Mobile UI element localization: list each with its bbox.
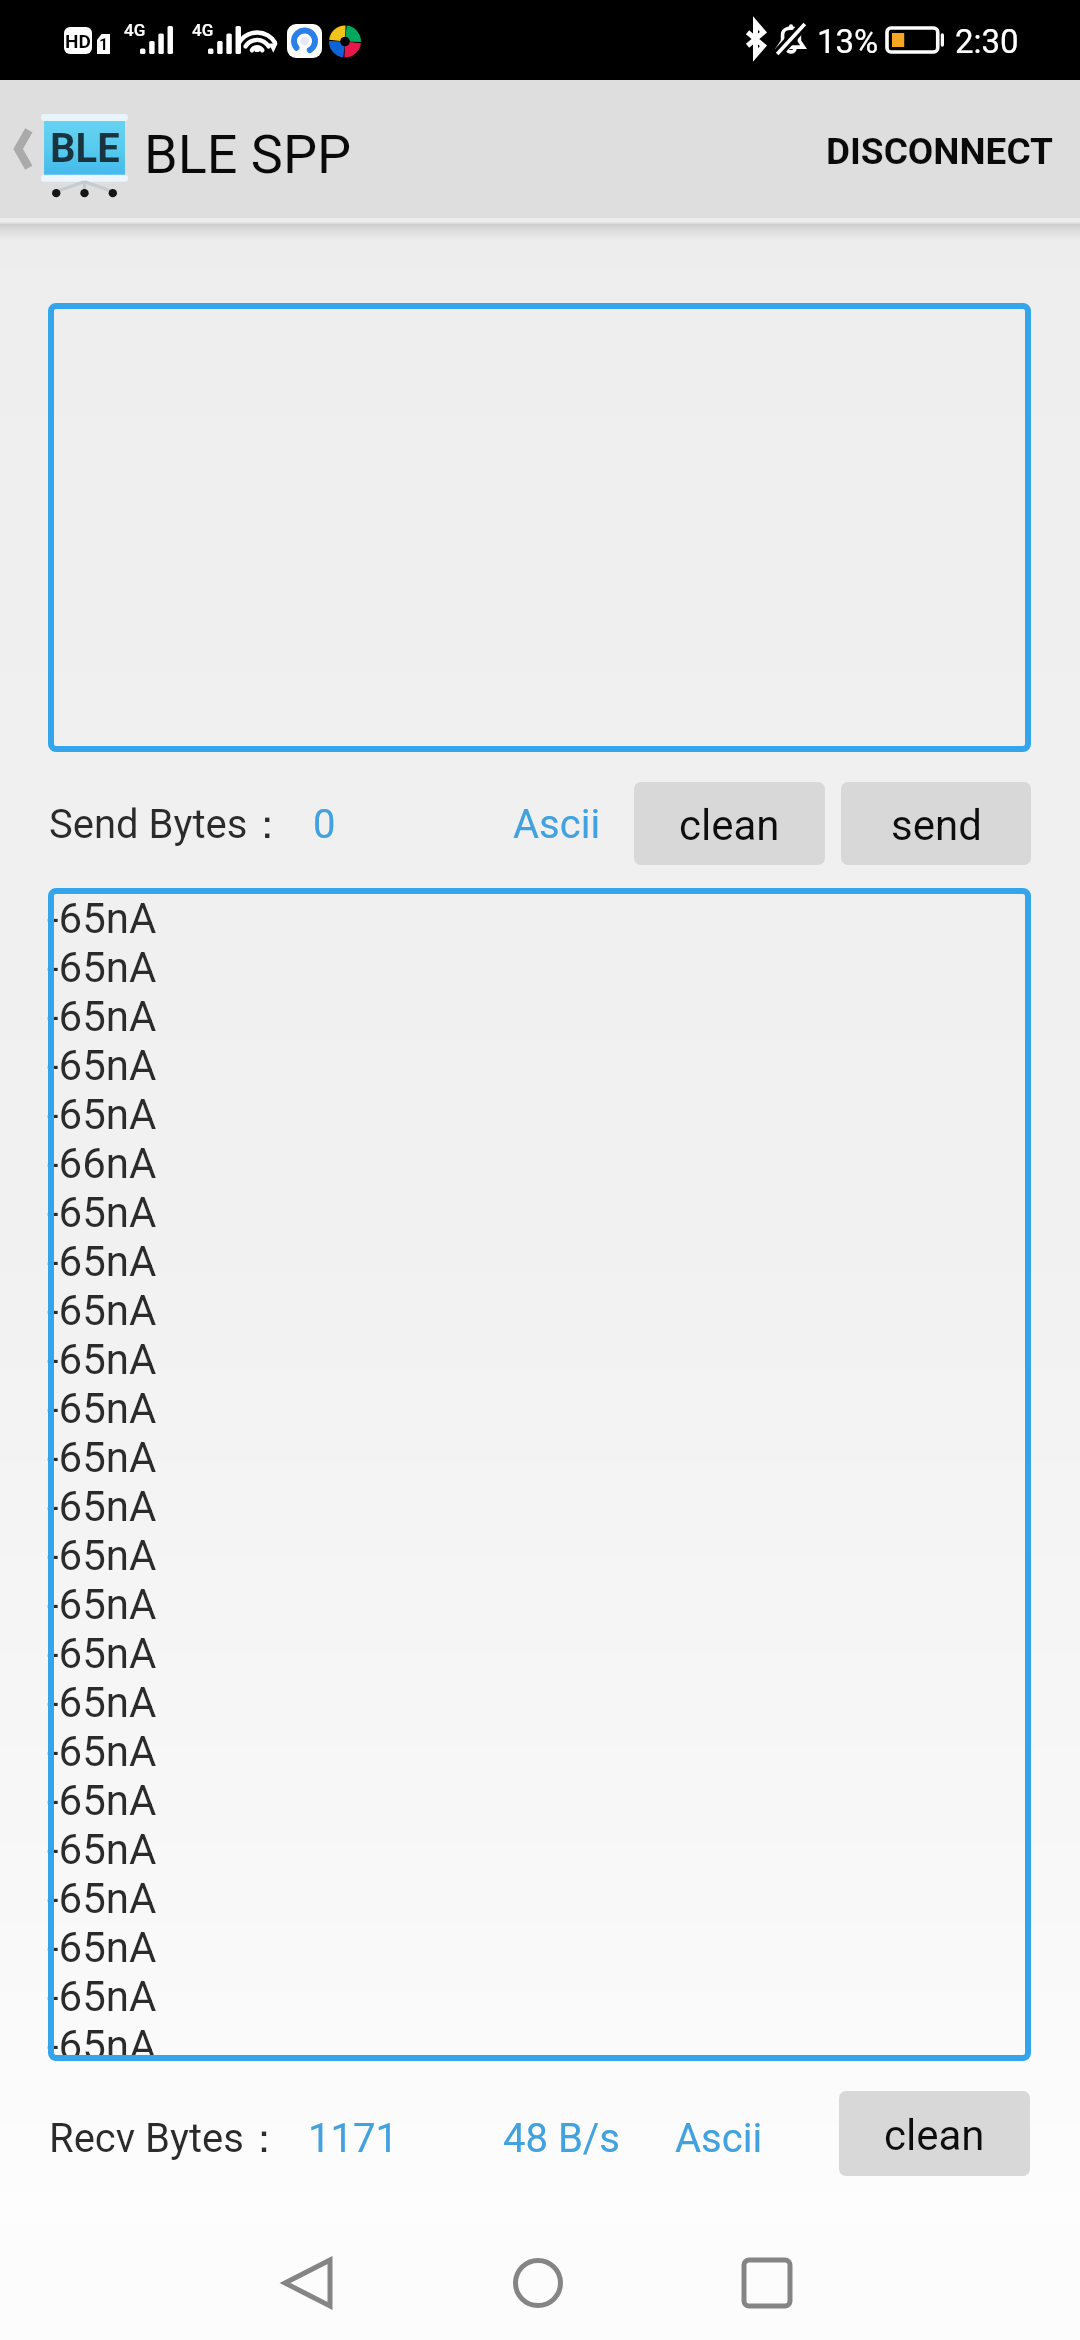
staticText: 13% [817,22,879,61]
staticText: -65nA [47,894,157,943]
staticText: -65nA [47,1188,157,1237]
button[interactable]: Navigate up [0,80,47,218]
button[interactable]: -65nA [48,888,1031,2061]
staticText: -65nA [47,1384,157,1433]
button[interactable] [48,303,1031,752]
staticText: -65nA [47,1286,157,1335]
button[interactable]: clean [839,2091,1030,2176]
staticText: -66nA [47,1139,157,1188]
button[interactable]: DISCONNECT [796,104,1080,195]
button[interactable]: Recent apps [707,2225,827,2340]
staticText: -65nA [47,1776,157,1825]
staticText: Ascii [513,801,601,848]
staticText: clean [679,801,780,850]
staticText: 4G [124,20,146,40]
staticText: -65nA [47,1335,157,1384]
staticText: 4G [192,20,214,40]
staticText: -65nA [47,1580,157,1629]
staticText: Recv Bytes： [49,2113,284,2163]
staticText: 1 [99,35,109,54]
staticText: BLE [50,125,120,172]
staticText: -65nA [47,1237,157,1286]
staticText: -65nA [47,992,157,1041]
staticText: -65nA [47,1090,157,1139]
staticText: -65nA [47,1727,157,1776]
staticText: -65nA [47,1678,157,1727]
button[interactable]: clean [634,782,825,865]
staticText: -65nA [47,1531,157,1580]
button[interactable]: send [841,782,1031,865]
staticText: Ascii [675,2115,763,2162]
staticText: -65nA [47,1629,157,1678]
staticText: 0 [313,801,336,848]
button[interactable]: Ascii [667,2101,771,2176]
staticText: DISCONNECT [826,130,1054,173]
staticText: 48 B/s [503,2115,620,2162]
staticText: -65nA [47,2021,157,2061]
staticText: -65nA [47,1041,157,1090]
staticText: 2:30 [955,22,1019,61]
button[interactable]: Back [247,2225,367,2340]
staticText: HD [65,30,91,52]
staticText: -65nA [47,1972,157,2021]
staticText: clean [884,2111,985,2160]
staticText: -65nA [47,1923,157,1972]
staticText: -65nA [47,1874,157,1923]
button[interactable]: Ascii [505,787,609,862]
button[interactable]: Home [478,2225,598,2340]
staticText: Send Bytes： [49,799,288,849]
staticText: -65nA [47,943,157,992]
staticText: send [891,801,982,850]
staticText: 1171 [308,2115,398,2162]
staticText: BLE SPP [144,123,352,186]
staticText: -65nA [47,1825,157,1874]
staticText: -65nA [47,1433,157,1482]
staticText: -65nA [47,1482,157,1531]
